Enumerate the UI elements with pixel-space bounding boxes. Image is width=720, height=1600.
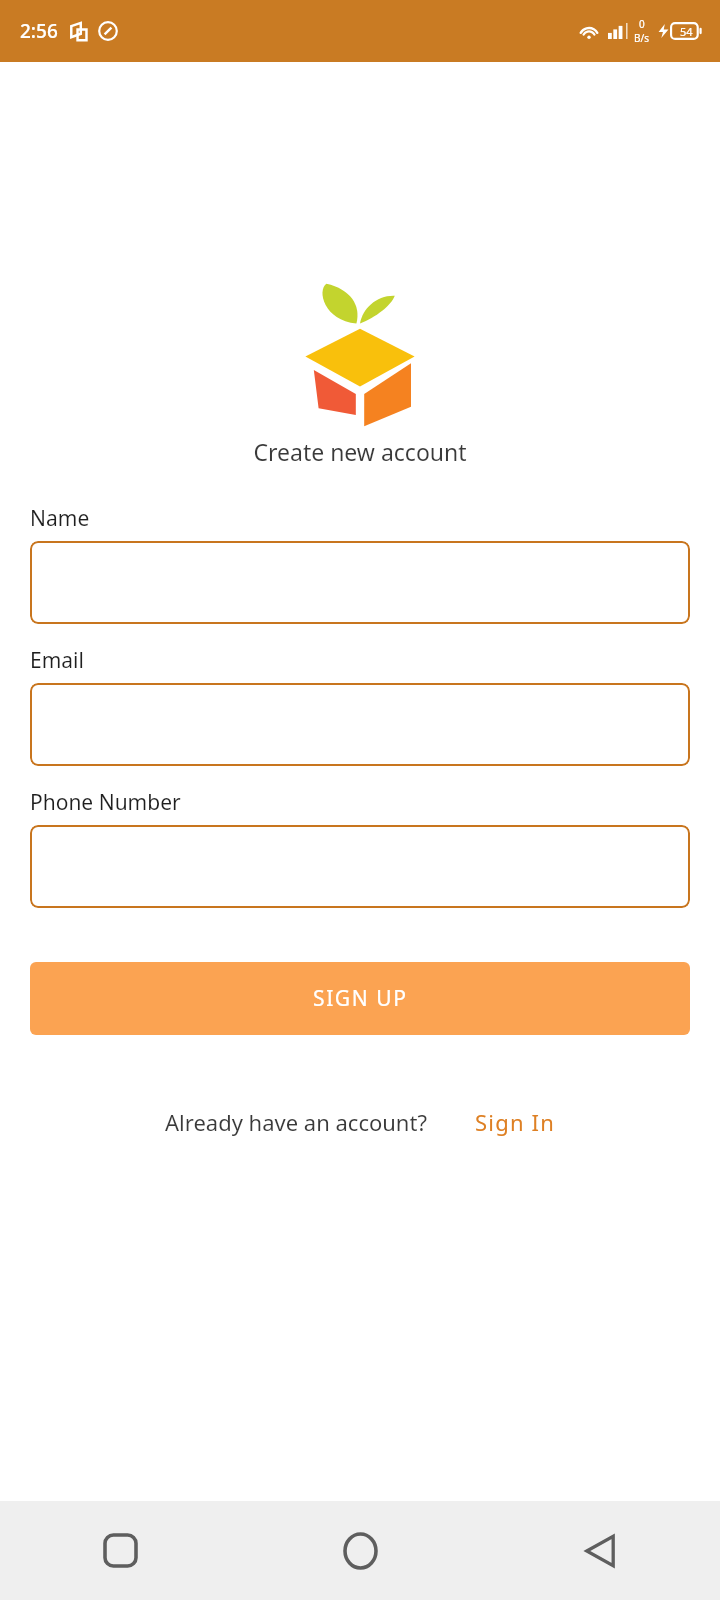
button[interactable]: Back [480,1501,720,1600]
staticText: Phone Number [30,788,181,817]
button[interactable]: Home [240,1501,480,1600]
staticText: 54 [680,24,693,39]
staticText: 0 [639,17,645,31]
button[interactable] [30,541,690,624]
staticText: Name [30,504,90,533]
button[interactable] [30,825,690,908]
staticText: Create new account [0,436,720,467]
staticText: SIGN UP [313,984,408,1013]
staticText: 2:56 [20,18,58,44]
staticText: Email [30,646,84,675]
button[interactable]: Sign In [475,1107,556,1137]
staticText: Sign In [475,1107,556,1137]
button[interactable] [30,683,690,766]
button[interactable]: Recents [0,1501,240,1600]
staticText: B/s [634,31,650,45]
button[interactable]: SIGN UP [30,962,690,1035]
staticText: Already have an account? [165,1107,427,1137]
